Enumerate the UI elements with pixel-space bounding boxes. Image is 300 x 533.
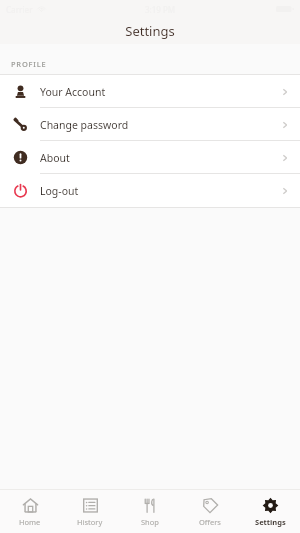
button[interactable]: History: [60, 490, 120, 533]
other: About: [13, 150, 28, 165]
staticText: Settings: [125, 22, 175, 40]
button[interactable]: About: [0, 141, 300, 174]
button[interactable]: Home: [0, 490, 60, 533]
staticText: Home: [19, 517, 41, 527]
staticText: Log-out: [40, 184, 79, 198]
button[interactable]: Offers: [180, 490, 240, 533]
staticText: History: [77, 517, 103, 527]
staticText: Shop: [141, 517, 159, 527]
button[interactable]: Change password: [0, 108, 300, 141]
staticText: About: [40, 151, 70, 165]
staticText: Settings: [255, 517, 286, 527]
button[interactable]: Shop: [120, 490, 180, 533]
button[interactable]: Account: [0, 75, 300, 108]
button[interactable]: Settings: [240, 490, 300, 533]
button[interactable]: Log out: [0, 174, 300, 207]
other: Account: [13, 84, 28, 99]
staticText: Offers: [199, 517, 221, 527]
staticText: PROFILE: [11, 59, 47, 69]
staticText: Change password: [40, 118, 129, 132]
staticText: Your Account: [40, 85, 106, 99]
other: Change password: [13, 117, 28, 132]
other: Log out: [13, 183, 28, 198]
